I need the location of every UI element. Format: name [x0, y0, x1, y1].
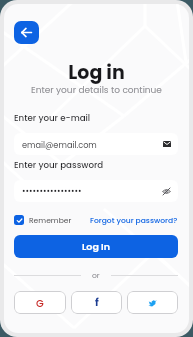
button[interactable]: email@email.com: [14, 133, 178, 155]
staticText: Log In: [82, 240, 111, 253]
button[interactable]: •••••••••••••••••: [14, 180, 178, 202]
staticText: Remember: [29, 215, 72, 225]
button[interactable]: Remember: [14, 215, 72, 225]
staticText: Enter your e-mail: [14, 112, 91, 124]
button[interactable]: Sign in with Facebook: [71, 291, 122, 314]
staticText: •••••••••••••••••: [22, 185, 162, 197]
staticText: f: [95, 295, 99, 310]
staticText: Enter your password: [14, 159, 104, 171]
staticText: Enter your details to continue: [0, 84, 193, 97]
staticText: Log in: [0, 59, 193, 86]
button[interactable]: Sign in with Google: [14, 291, 66, 314]
button[interactable]: Forgot your password?: [90, 215, 178, 225]
button[interactable]: Back: [14, 21, 39, 44]
staticText: G: [36, 296, 44, 310]
button[interactable]: Sign in with Twitter: [127, 291, 178, 314]
button[interactable]: Log In: [14, 235, 178, 258]
staticText: email@email.com: [22, 139, 163, 150]
staticText: or: [92, 270, 100, 281]
